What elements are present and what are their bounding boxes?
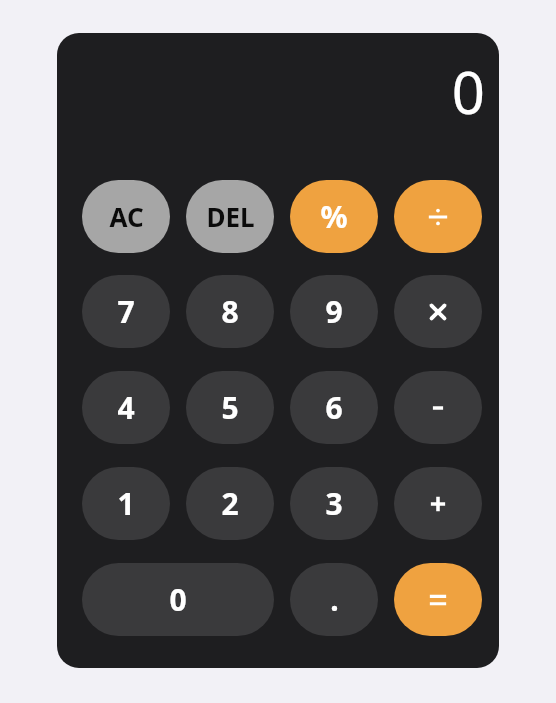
staticText: 0: [169, 579, 187, 620]
staticText: 5: [221, 387, 239, 428]
staticText: 7: [117, 291, 135, 332]
button[interactable]: Plus: [394, 467, 482, 540]
button[interactable]: AC: [82, 180, 170, 253]
staticText: %: [320, 196, 348, 237]
button[interactable]: DEL: [186, 180, 274, 253]
button[interactable]: Divide: [394, 180, 482, 253]
staticText: 2: [221, 483, 239, 524]
staticText: 4: [117, 387, 135, 428]
button[interactable]: 0: [82, 563, 274, 636]
staticText: AC: [109, 199, 144, 234]
button[interactable]: 6: [290, 371, 378, 444]
button[interactable]: .: [290, 563, 378, 636]
button[interactable]: 7: [82, 275, 170, 348]
staticText: .: [330, 579, 339, 620]
button[interactable]: Equals: [394, 563, 482, 636]
button[interactable]: 1: [82, 467, 170, 540]
button[interactable]: 2: [186, 467, 274, 540]
button[interactable]: %: [290, 180, 378, 253]
staticText: 6: [325, 387, 343, 428]
staticText: 0: [451, 52, 485, 131]
staticText: 8: [221, 291, 239, 332]
button[interactable]: 5: [186, 371, 274, 444]
button[interactable]: Multiply: [394, 275, 482, 348]
button[interactable]: 8: [186, 275, 274, 348]
staticText: 1: [117, 483, 135, 524]
button[interactable]: 4: [82, 371, 170, 444]
button[interactable]: 9: [290, 275, 378, 348]
staticText: 3: [325, 483, 343, 524]
staticText: 9: [325, 291, 343, 332]
staticText: DEL: [206, 199, 255, 234]
button[interactable]: 3: [290, 467, 378, 540]
button[interactable]: Minus: [394, 371, 482, 444]
